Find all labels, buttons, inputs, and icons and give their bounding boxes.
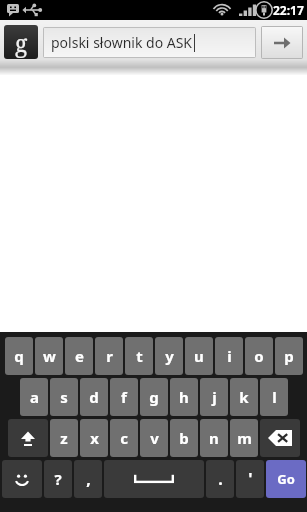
staticText: w <box>43 346 56 366</box>
button[interactable]: n <box>200 419 228 457</box>
button[interactable]: j <box>200 378 228 416</box>
staticText: p <box>284 346 294 366</box>
button[interactable]: u <box>185 337 213 375</box>
button[interactable]: Search <box>262 27 302 58</box>
button[interactable]: h <box>170 378 198 416</box>
button[interactable]: ' <box>236 460 264 498</box>
button[interactable]: e <box>65 337 93 375</box>
button[interactable]: , <box>74 460 102 498</box>
button[interactable]: q <box>5 337 33 375</box>
button[interactable]: r <box>95 337 123 375</box>
button[interactable]: Space <box>104 460 204 498</box>
button[interactable]: y <box>155 337 183 375</box>
button[interactable]: Backspace <box>260 419 300 457</box>
staticText: g <box>149 387 159 407</box>
staticText: i <box>227 346 232 366</box>
button[interactable]: g <box>140 378 168 416</box>
staticText: t <box>136 346 143 366</box>
staticText: q <box>14 346 24 366</box>
button[interactable]: d <box>80 378 108 416</box>
staticText: n <box>209 428 219 448</box>
staticText: s <box>60 387 68 407</box>
button[interactable]: s <box>50 378 78 416</box>
button[interactable]: p <box>275 337 303 375</box>
staticText: d <box>89 387 99 407</box>
button[interactable]: t <box>125 337 153 375</box>
staticText: r <box>106 346 113 366</box>
button[interactable]: x <box>80 419 108 457</box>
button[interactable]: Go <box>266 460 306 498</box>
staticText: y <box>165 346 174 366</box>
button[interactable]: Google search provider <box>4 25 38 59</box>
button[interactable]: m <box>230 419 258 457</box>
button[interactable]: b <box>170 419 198 457</box>
button[interactable]: k <box>230 378 258 416</box>
staticText: e <box>75 346 84 366</box>
staticText: z <box>60 428 68 448</box>
staticText: v <box>150 428 159 448</box>
staticText: l <box>272 387 277 407</box>
staticText: m <box>237 428 252 448</box>
button[interactable]: . <box>206 460 234 498</box>
staticText: h <box>179 387 189 407</box>
staticText: f <box>121 387 127 407</box>
button[interactable]: o <box>245 337 273 375</box>
button[interactable]: a <box>20 378 48 416</box>
button[interactable]: i <box>215 337 243 375</box>
staticText: o <box>254 346 264 366</box>
staticText: ' <box>248 468 253 490</box>
staticText: j <box>212 387 217 407</box>
staticText: b <box>179 428 189 448</box>
staticText: Go <box>277 470 295 488</box>
button[interactable]: z <box>50 419 78 457</box>
button[interactable]: c <box>110 419 138 457</box>
button[interactable]: l <box>260 378 288 416</box>
staticText: u <box>194 346 204 366</box>
staticText: . <box>218 468 223 490</box>
button[interactable]: polski słownik do ASK <box>44 28 255 57</box>
staticText: ? <box>54 469 62 489</box>
staticText: k <box>239 387 249 407</box>
button[interactable]: Emoji <box>2 460 42 498</box>
button[interactable]: ? <box>44 460 72 498</box>
staticText: c <box>120 428 128 448</box>
staticText: g <box>15 27 28 58</box>
button[interactable]: f <box>110 378 138 416</box>
staticText: a <box>30 387 39 407</box>
button[interactable]: w <box>35 337 63 375</box>
staticText: polski słownik do ASK <box>51 33 193 52</box>
staticText: , <box>86 468 91 490</box>
staticText: x <box>90 428 99 448</box>
staticText: 22:17 <box>273 2 304 18</box>
button[interactable]: Shift <box>8 419 48 457</box>
button[interactable]: v <box>140 419 168 457</box>
